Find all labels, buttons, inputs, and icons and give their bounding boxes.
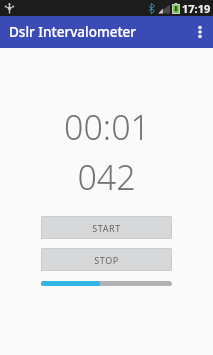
staticText: Dslr Intervalometer	[9, 23, 137, 41]
staticText: 042	[77, 154, 136, 200]
staticText: 00:01	[64, 104, 150, 150]
button[interactable]: More options	[187, 16, 213, 48]
staticText: STOP	[94, 254, 119, 266]
staticText: START	[92, 222, 121, 234]
staticText: 17:19	[182, 1, 211, 16]
button[interactable]: START	[41, 216, 172, 239]
button[interactable]: STOP	[41, 248, 172, 271]
